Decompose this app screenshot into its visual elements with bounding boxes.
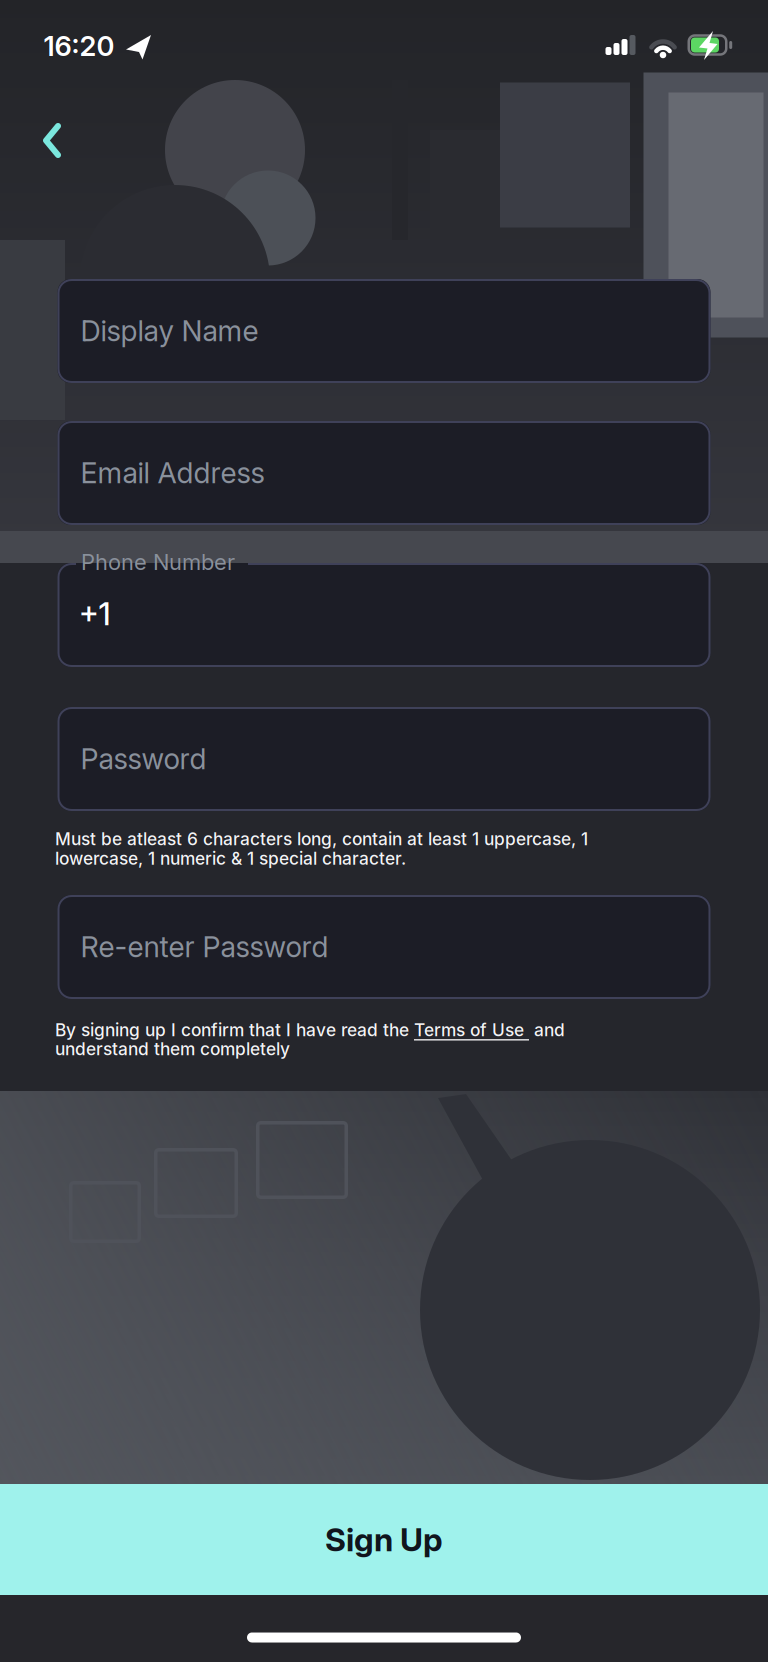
staticText: 16:20 — [43, 29, 114, 63]
staticText: Sign Up — [325, 1520, 443, 1559]
button[interactable]: Terms of Use — [414, 1019, 529, 1040]
button[interactable]: +1 — [57, 563, 710, 667]
button[interactable]: Email Address — [57, 421, 710, 525]
staticText: Phone Number — [81, 549, 235, 575]
staticText: Must be atleast 6 characters long, conta… — [55, 828, 588, 849]
button[interactable]: Password — [57, 707, 710, 811]
staticText: By signing up I confirm that I have read… — [55, 1019, 414, 1040]
staticText: Display Name — [80, 314, 258, 348]
staticText: Terms of Use — [414, 1019, 529, 1040]
staticText: and — [529, 1019, 565, 1040]
button[interactable]: Sign Up — [0, 1484, 768, 1595]
staticText: lowercase, 1 numeric & 1 special charact… — [55, 848, 406, 869]
button[interactable]: Re-enter Password — [57, 895, 710, 999]
staticText: Email Address — [80, 456, 264, 490]
staticText: understand them completely — [55, 1038, 290, 1059]
staticText: Password — [80, 742, 206, 776]
button[interactable]: Display Name — [57, 279, 710, 383]
staticText: Re-enter Password — [80, 930, 328, 964]
button[interactable]: Back — [29, 121, 75, 160]
staticText: +1 — [78, 595, 110, 633]
